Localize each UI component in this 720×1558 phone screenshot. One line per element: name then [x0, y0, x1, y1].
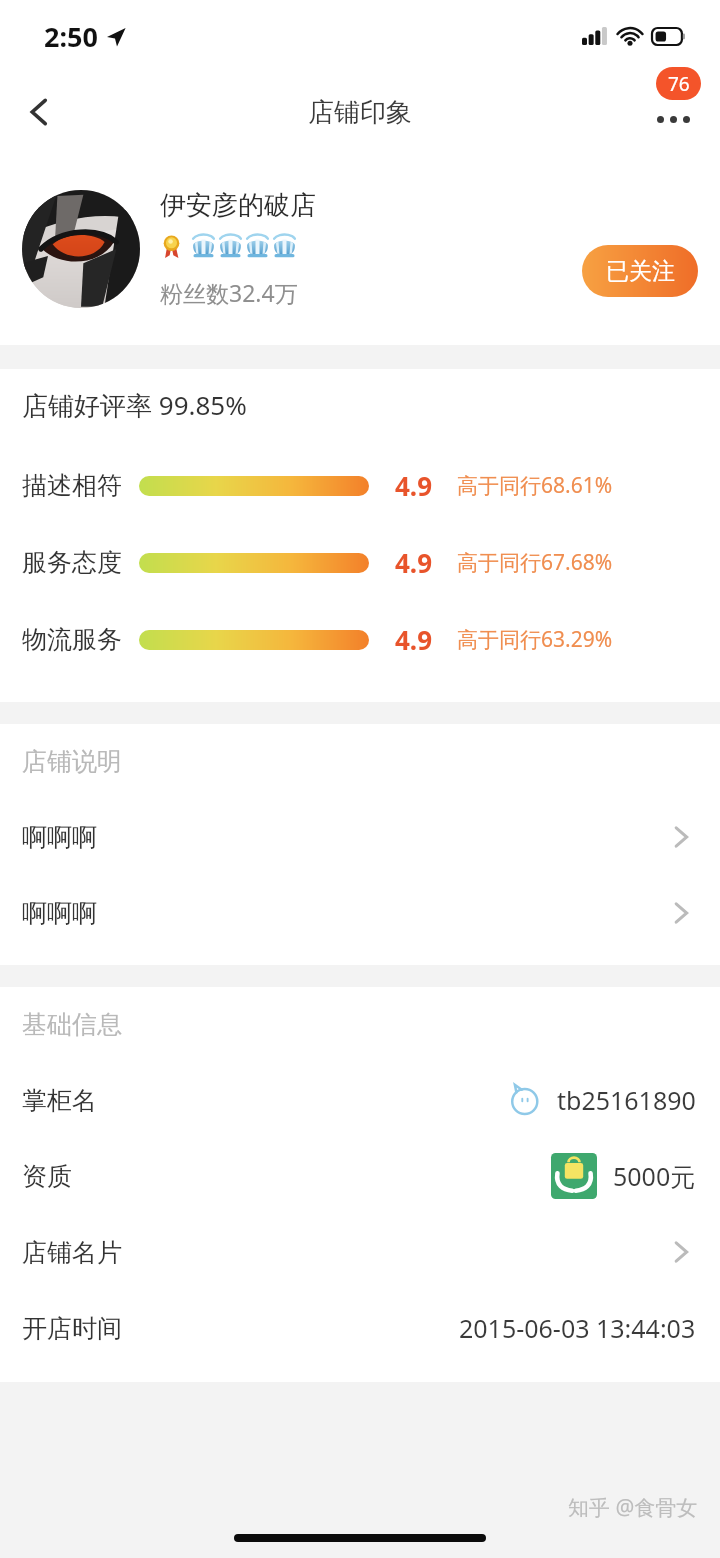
- button[interactable]: 已关注: [582, 245, 698, 297]
- staticText: 5000元: [613, 1159, 696, 1193]
- staticText: 啊啊啊: [22, 898, 97, 929]
- button[interactable]: 资质: [0, 1138, 720, 1214]
- button[interactable]: More options: [640, 79, 706, 145]
- staticText: 高于同行67.68%: [457, 548, 613, 577]
- button[interactable]: 物流服务: [0, 601, 720, 678]
- button[interactable]: 掌柜名: [0, 1062, 720, 1138]
- button[interactable]: 开店时间: [0, 1290, 720, 1366]
- staticText: 粉丝数32.4万: [160, 277, 298, 308]
- staticText: 物流服务: [22, 624, 122, 655]
- staticText: 4.9: [395, 468, 433, 503]
- staticText: 高于同行63.29%: [457, 625, 613, 654]
- staticText: 开店时间: [22, 1313, 122, 1344]
- staticText: 知乎 @食骨女: [568, 1493, 698, 1522]
- staticText: 店铺印象: [308, 96, 412, 129]
- button[interactable]: Back: [10, 83, 68, 141]
- staticText: 店铺说明: [22, 746, 122, 777]
- button[interactable]: 啊啊啊: [0, 875, 720, 951]
- staticText: tb25161890: [557, 1083, 696, 1117]
- staticText: 掌柜名: [22, 1085, 97, 1116]
- staticText: 高于同行68.61%: [457, 471, 613, 500]
- staticText: 2015-06-03 13:44:03: [459, 1311, 696, 1345]
- staticText: 啊啊啊: [22, 822, 97, 853]
- button[interactable]: 描述相符: [0, 447, 720, 524]
- button[interactable]: Shop avatar: [22, 190, 140, 308]
- button[interactable]: 服务态度: [0, 524, 720, 601]
- button[interactable]: 啊啊啊: [0, 799, 720, 875]
- button[interactable]: 店铺名片: [0, 1214, 720, 1290]
- staticText: 店铺名片: [22, 1237, 122, 1268]
- staticText: 店铺好评率 99.85%: [22, 387, 247, 423]
- staticText: 基础信息: [22, 1009, 122, 1040]
- staticText: 伊安彦的破店: [160, 189, 316, 222]
- staticText: 76: [668, 71, 690, 97]
- staticText: 4.9: [395, 622, 433, 657]
- staticText: 2:50: [44, 18, 98, 55]
- staticText: 资质: [22, 1161, 72, 1192]
- staticText: 4.9: [395, 545, 433, 580]
- staticText: 服务态度: [22, 547, 122, 578]
- staticText: 描述相符: [22, 470, 122, 501]
- staticText: 已关注: [606, 257, 675, 286]
